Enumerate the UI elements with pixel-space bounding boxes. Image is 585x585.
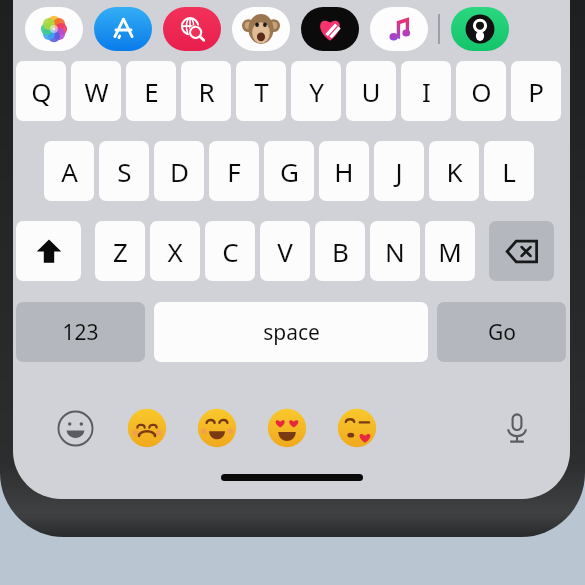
button[interactable]: Dictation (494, 405, 540, 451)
button[interactable]: App (451, 7, 509, 51)
button[interactable]: Shift (16, 221, 81, 281)
staticText: P (528, 74, 544, 109)
button[interactable]: W (71, 61, 121, 121)
button[interactable]: App (370, 7, 428, 51)
button[interactable]: Emoji (125, 406, 169, 450)
staticText: C (222, 234, 239, 269)
staticText: Go (488, 318, 516, 347)
staticText: O (471, 74, 492, 109)
button[interactable]: S (99, 141, 149, 201)
button[interactable]: H (319, 141, 369, 201)
button[interactable]: M (425, 221, 475, 281)
staticText: space (263, 318, 320, 347)
button[interactable]: Go (437, 302, 566, 362)
button[interactable]: T (236, 61, 286, 121)
button[interactable]: E (126, 61, 176, 121)
staticText: M (438, 234, 462, 269)
button[interactable]: 123 (16, 302, 145, 362)
staticText: X (167, 234, 183, 269)
button[interactable]: App (301, 7, 359, 51)
staticText: V (277, 234, 293, 269)
staticText: H (334, 154, 354, 189)
staticText: T (254, 74, 269, 109)
button[interactable]: G (264, 141, 314, 201)
button[interactable]: I (401, 61, 451, 121)
button[interactable]: P (511, 61, 561, 121)
button[interactable]: J (374, 141, 424, 201)
staticText: Z (113, 234, 128, 269)
button[interactable]: Emoji (265, 406, 309, 450)
staticText: E (144, 74, 159, 109)
staticText: R (198, 74, 215, 109)
staticText: B (332, 234, 349, 269)
button[interactable]: K (429, 141, 479, 201)
button[interactable]: App (94, 7, 152, 51)
staticText: S (117, 154, 132, 189)
button[interactable]: V (260, 221, 310, 281)
staticText: K (446, 154, 463, 189)
staticText: F (227, 154, 241, 189)
button[interactable]: Y (291, 61, 341, 121)
button[interactable]: App (25, 7, 83, 51)
button[interactable]: F (209, 141, 259, 201)
button[interactable]: space (154, 302, 428, 362)
staticText: A (61, 154, 78, 189)
button[interactable]: Q (16, 61, 66, 121)
button[interactable]: App (232, 7, 290, 51)
button[interactable]: O (456, 61, 506, 121)
staticText: L (502, 154, 516, 189)
button[interactable]: D (154, 141, 204, 201)
button[interactable]: A (44, 141, 94, 201)
button[interactable]: App (163, 7, 221, 51)
staticText: Q (31, 74, 52, 109)
staticText: N (385, 234, 405, 269)
button[interactable]: L (484, 141, 534, 201)
staticText: U (361, 74, 381, 109)
staticText: Y (309, 74, 324, 109)
button[interactable]: Emoji keyboard (51, 404, 99, 452)
staticText: D (170, 154, 189, 189)
button[interactable]: R (181, 61, 231, 121)
button[interactable]: U (346, 61, 396, 121)
staticText: G (280, 154, 299, 189)
button[interactable]: Z (95, 221, 145, 281)
button[interactable]: C (205, 221, 255, 281)
button[interactable]: Backspace (489, 221, 554, 281)
button[interactable]: Emoji (335, 406, 379, 450)
button[interactable]: B (315, 221, 365, 281)
button[interactable]: N (370, 221, 420, 281)
staticText: I (422, 74, 431, 109)
staticText: W (84, 74, 109, 109)
button[interactable]: X (150, 221, 200, 281)
button[interactable]: Emoji (195, 406, 239, 450)
staticText: 123 (62, 318, 99, 347)
staticText: J (395, 154, 403, 189)
